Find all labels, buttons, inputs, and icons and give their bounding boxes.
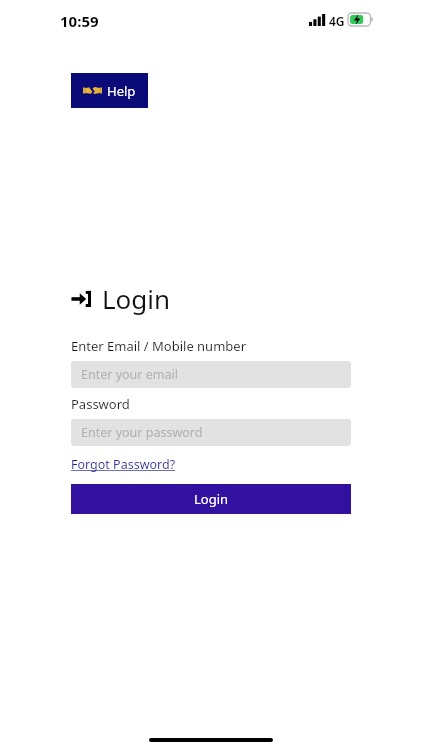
other: Signal strength: [309, 14, 325, 26]
staticText: Enter your email: [81, 366, 178, 383]
staticText: Login: [194, 490, 229, 508]
staticText: Help: [107, 82, 136, 100]
other: Battery charging: [348, 13, 374, 26]
button[interactable]: Help: [71, 73, 148, 108]
staticText: 10:59: [60, 11, 99, 31]
staticText: Forgot Password?: [71, 456, 176, 473]
button[interactable]: Forgot Password?: [71, 456, 176, 473]
staticText: Login: [102, 281, 171, 316]
staticText: Enter your password: [81, 424, 203, 441]
staticText: 4G: [329, 13, 345, 29]
staticText: Enter Email / Mobile number: [71, 337, 247, 355]
button[interactable]: Enter your password: [71, 419, 351, 446]
button[interactable]: Login: [71, 484, 351, 514]
button[interactable]: Enter your email: [71, 361, 351, 388]
staticText: Password: [71, 395, 130, 413]
